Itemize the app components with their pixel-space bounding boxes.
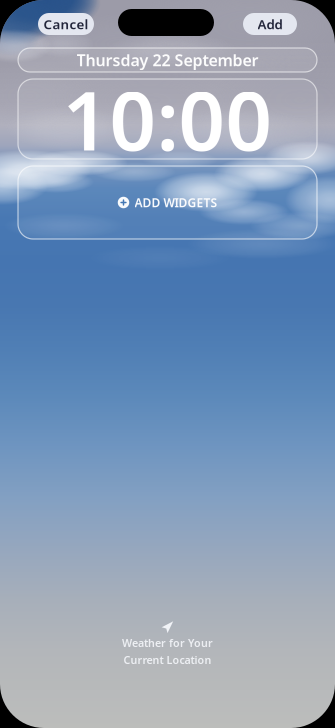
button[interactable]: Thursday 22 September xyxy=(18,48,317,72)
staticText: Cancel xyxy=(43,15,88,33)
staticText: Current Location xyxy=(123,653,211,667)
staticText: 10:00 xyxy=(62,65,272,173)
staticText: ADD WIDGETS xyxy=(134,194,217,210)
button[interactable]: 10:00 xyxy=(18,79,317,159)
staticText: Weather for Your xyxy=(122,636,213,650)
staticText: Add xyxy=(257,15,282,33)
button[interactable]: Add xyxy=(243,13,297,35)
button[interactable]: Cancel xyxy=(38,13,94,35)
button[interactable]: ADD WIDGETS xyxy=(18,166,317,239)
staticText: Thursday 22 September xyxy=(76,49,258,71)
